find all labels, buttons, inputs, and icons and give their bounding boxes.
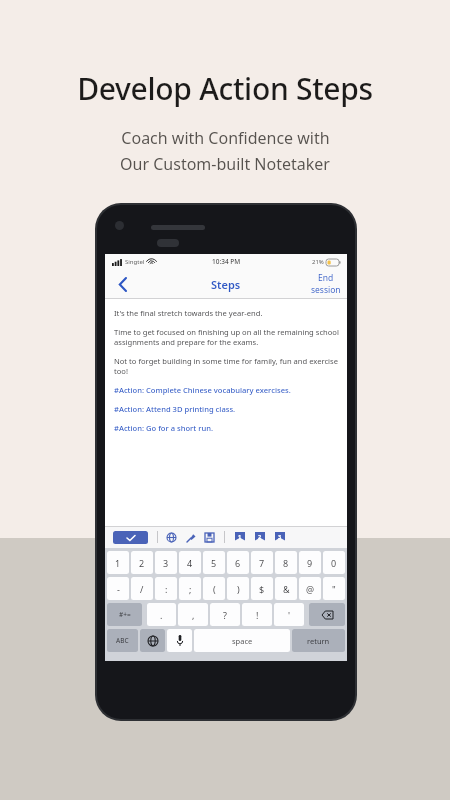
staticText: 2	[258, 533, 262, 540]
button[interactable]: Globe	[165, 531, 178, 544]
staticText: 3	[163, 557, 169, 569]
staticText: ?	[223, 609, 227, 621]
staticText: Time to get focused on finishing up on a…	[114, 327, 339, 347]
button[interactable]: Save	[203, 531, 216, 544]
button[interactable]: Change keyboard	[140, 629, 165, 652]
button[interactable]: End	[311, 272, 341, 296]
button[interactable]: #+=	[107, 603, 142, 626]
staticText: 10:34 PM	[212, 257, 241, 266]
staticText: @	[306, 583, 315, 595]
button[interactable]: 5	[203, 551, 225, 574]
staticText: 21%	[312, 258, 324, 266]
staticText: 6	[235, 557, 241, 569]
button[interactable]: Confirm	[113, 531, 148, 544]
staticText: !	[256, 609, 259, 621]
staticText: return	[307, 636, 330, 646]
button[interactable]: $	[251, 577, 273, 600]
staticText: 2	[139, 557, 145, 569]
button[interactable]: Pin	[184, 531, 197, 544]
button[interactable]: &	[275, 577, 297, 600]
staticText: It's the final stretch towards the year-…	[114, 308, 263, 318]
staticText: #Action: Complete Chinese vocabulary exe…	[114, 385, 291, 395]
button[interactable]: 3	[155, 551, 177, 574]
staticText: Steps	[211, 277, 241, 292]
staticText: (	[213, 583, 216, 595]
staticText: 8	[283, 557, 289, 569]
staticText: #+=	[119, 610, 131, 619]
staticText: #Action: Attend 3D printing class.	[114, 404, 236, 414]
staticText: #Action: Go for a short run.	[114, 423, 213, 433]
staticText: End	[318, 272, 334, 284]
button[interactable]: Tag 2	[253, 531, 266, 544]
button[interactable]: 2	[131, 551, 153, 574]
staticText: '	[288, 609, 291, 621]
staticText: "	[332, 583, 336, 595]
button[interactable]: :	[155, 577, 177, 600]
button[interactable]: space	[194, 629, 290, 652]
staticText: session	[311, 284, 341, 296]
button[interactable]: -	[107, 577, 129, 600]
staticText: Coach with Confidence with	[121, 127, 330, 149]
button[interactable]: ,	[178, 603, 208, 626]
button[interactable]: @	[299, 577, 321, 600]
button[interactable]: ?	[210, 603, 240, 626]
button[interactable]: Delete	[309, 603, 345, 626]
staticText: /	[140, 583, 144, 595]
staticText: .	[160, 609, 163, 621]
button[interactable]: 4	[179, 551, 201, 574]
staticText: 3	[278, 533, 282, 540]
staticText: 1	[238, 533, 242, 540]
staticText: Develop Action Steps	[77, 68, 373, 109]
staticText: :	[165, 583, 168, 595]
button[interactable]: Tag 3	[273, 531, 286, 544]
staticText: 5	[211, 557, 217, 569]
button[interactable]: 9	[299, 551, 321, 574]
button[interactable]: 0	[323, 551, 345, 574]
staticText: Singtel	[125, 258, 145, 266]
button[interactable]: !	[242, 603, 272, 626]
staticText: ABC	[116, 636, 129, 645]
staticText: $	[259, 583, 265, 595]
staticText: 7	[259, 557, 265, 569]
staticText: space	[232, 636, 253, 646]
button[interactable]: ABC	[107, 629, 138, 652]
button[interactable]: (	[203, 577, 225, 600]
staticText: ;	[189, 583, 192, 595]
button[interactable]: .	[147, 603, 176, 626]
button[interactable]: ;	[179, 577, 201, 600]
staticText: 9	[307, 557, 313, 569]
button[interactable]: 7	[251, 551, 273, 574]
button[interactable]: 6	[227, 551, 249, 574]
staticText: 0	[331, 557, 337, 569]
button[interactable]: Tag 1	[233, 531, 246, 544]
staticText: -	[117, 583, 120, 595]
staticText: 4	[187, 557, 193, 569]
staticText: Not to forget building in some time for …	[114, 356, 339, 376]
button[interactable]: Back	[109, 271, 135, 297]
button[interactable]: "	[323, 577, 345, 600]
button[interactable]: /	[131, 577, 153, 600]
staticText: )	[237, 583, 240, 595]
button[interactable]: 1	[107, 551, 129, 574]
button[interactable]: '	[274, 603, 304, 626]
staticText: 1	[115, 557, 121, 569]
button[interactable]: Dictate	[167, 629, 192, 652]
button[interactable]: )	[227, 577, 249, 600]
button[interactable]: 8	[275, 551, 297, 574]
staticText: &	[283, 583, 290, 595]
button[interactable]: return	[292, 629, 345, 652]
staticText: Our Custom-built Notetaker	[120, 153, 330, 175]
staticText: ,	[192, 609, 195, 621]
